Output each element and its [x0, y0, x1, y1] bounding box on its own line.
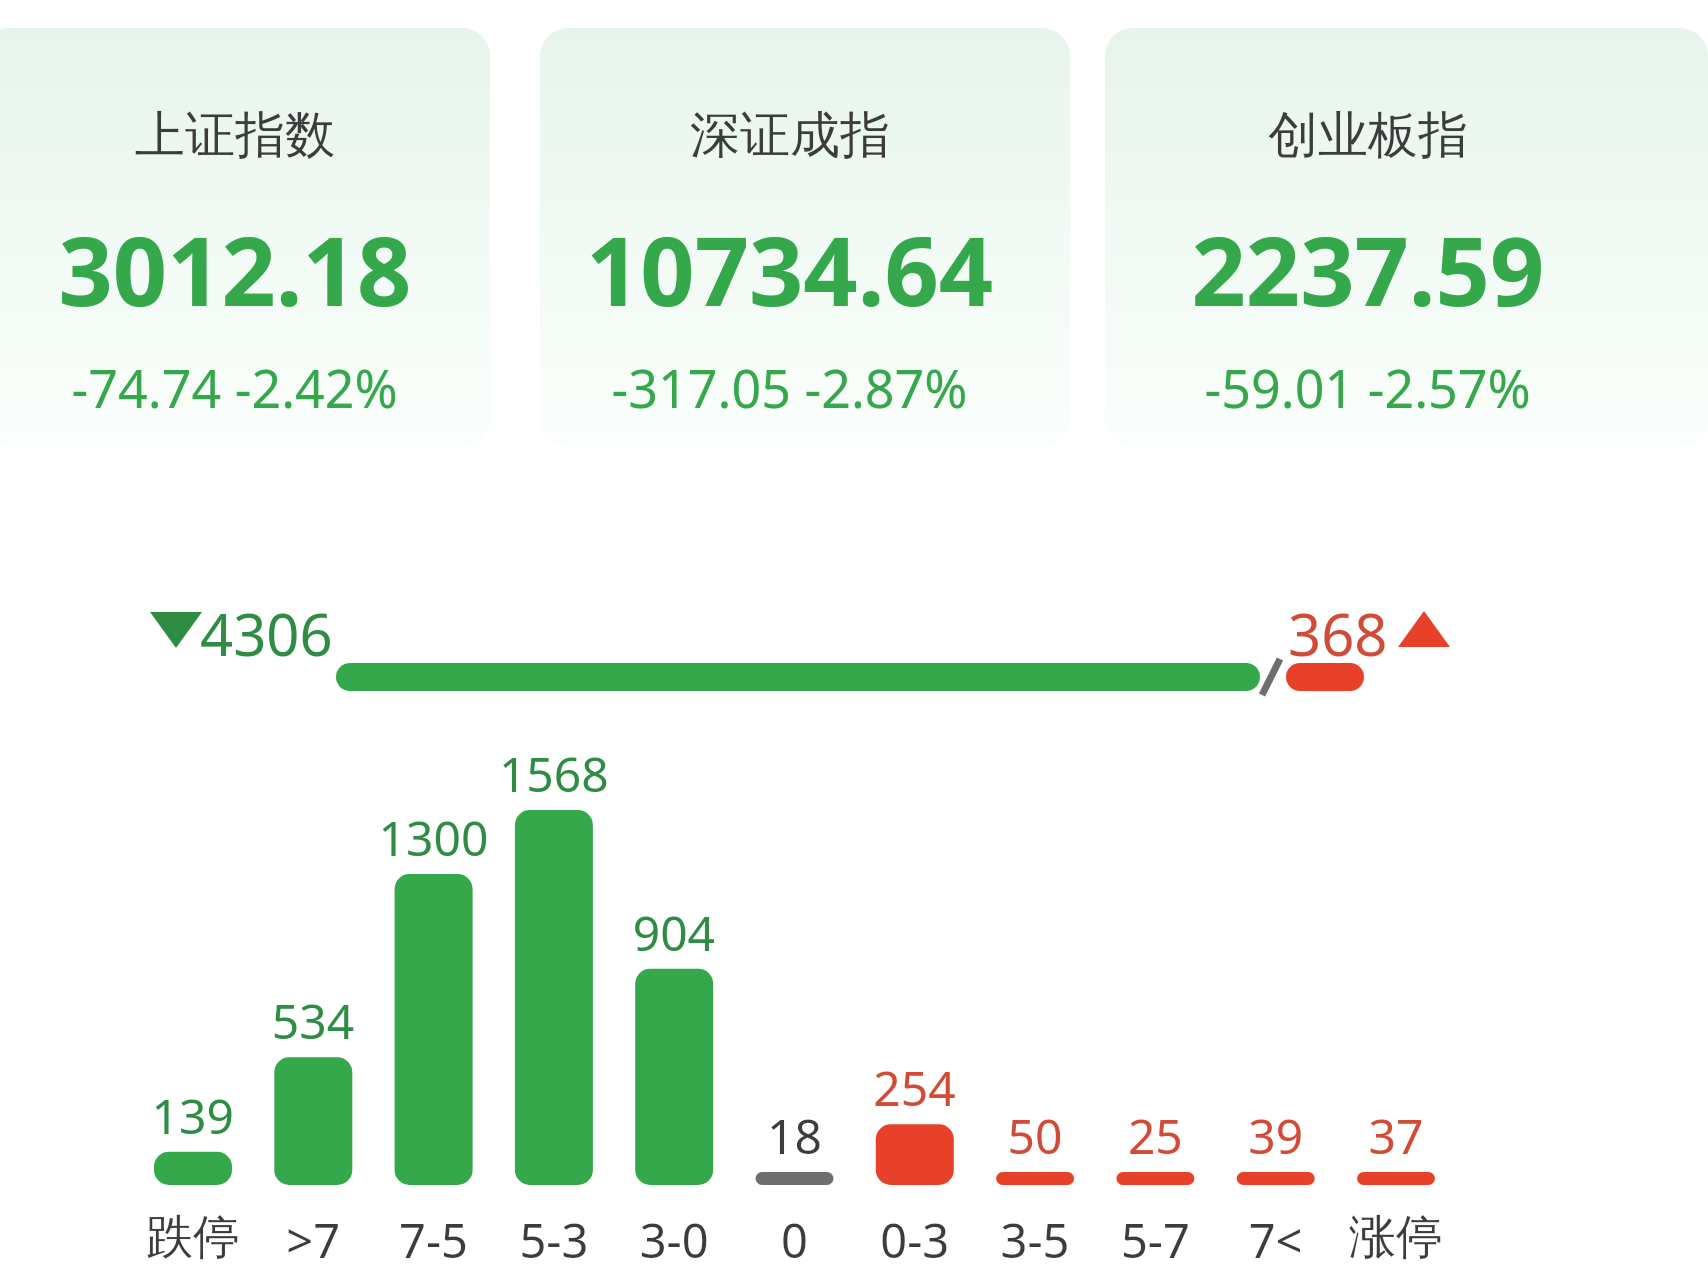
button[interactable]: 上证指数 3012.18 [0, 28, 490, 446]
button[interactable]: 涨跌分布图 [120, 590, 1580, 1280]
button[interactable]: 创业板指 2237.59 [1105, 28, 1665, 446]
button[interactable]: 深证成指 10734.64 [540, 28, 1070, 446]
